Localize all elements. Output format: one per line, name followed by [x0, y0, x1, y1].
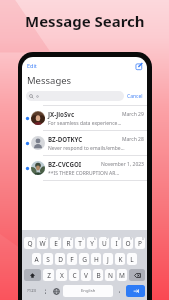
button[interactable]: Y [87, 237, 97, 249]
staticText: 2 [45, 237, 47, 241]
button[interactable]: Switch language [52, 285, 61, 297]
staticText: H [94, 255, 99, 264]
staticText: ?123 [27, 288, 37, 294]
staticText: M [119, 271, 125, 280]
staticText: English [81, 288, 96, 294]
staticText: W [39, 239, 46, 248]
button[interactable]: L [127, 253, 137, 265]
button[interactable]: Shift [24, 269, 41, 281]
staticText: Q [27, 239, 33, 248]
staticText: Y [90, 239, 94, 248]
button[interactable]: Search [126, 285, 145, 297]
staticText: JX-JioSvc [48, 110, 75, 118]
staticText: X [60, 271, 64, 280]
button[interactable]: X [56, 269, 67, 281]
button[interactable]: J [103, 253, 113, 265]
staticText: Message Search [25, 11, 145, 31]
button[interactable]: K [115, 253, 125, 265]
staticText: 0 [142, 237, 144, 241]
staticText: 6 [94, 237, 96, 241]
staticText: L [130, 255, 134, 264]
staticText: G [82, 255, 87, 264]
button[interactable]: W [37, 237, 48, 249]
staticText: C [72, 271, 77, 280]
button[interactable]: BZ-CVCGOI [22, 156, 147, 180]
staticText: J [107, 255, 109, 264]
button[interactable]: N [105, 269, 115, 281]
staticText: March 29 [122, 111, 144, 118]
staticText: 7 [106, 237, 108, 241]
button[interactable]: R [63, 237, 73, 249]
staticText: E [54, 239, 58, 248]
button[interactable]: I [111, 237, 121, 249]
staticText: For seamless data experience... [48, 120, 122, 127]
staticText: U [102, 239, 107, 248]
button[interactable]: Period [115, 285, 124, 297]
button[interactable]: A [32, 253, 41, 265]
button[interactable]: V [81, 269, 91, 281]
button[interactable]: F [67, 253, 77, 265]
button[interactable]: D [55, 253, 65, 265]
button[interactable]: B [93, 269, 103, 281]
staticText: March 28 [122, 136, 144, 143]
button[interactable]: Q [24, 237, 35, 249]
button[interactable]: BZ-DOTKYC [22, 131, 147, 155]
staticText: BZ-DOTKYC [48, 135, 83, 143]
button[interactable]: ?123 [24, 285, 39, 297]
button[interactable]: S [43, 253, 53, 265]
button[interactable]: M [117, 269, 127, 281]
staticText: **IS THERE CORRUPTION AR... [48, 170, 120, 177]
button[interactable]: E [50, 237, 61, 249]
button[interactable]: G [79, 253, 89, 265]
staticText: N [108, 271, 113, 280]
button[interactable]: H [91, 253, 101, 265]
button[interactable]: P [135, 237, 145, 249]
staticText: P [138, 239, 142, 248]
staticText: I [115, 239, 118, 248]
button[interactable]: C [69, 269, 79, 281]
staticText: O [125, 239, 131, 248]
button[interactable]: Z [43, 269, 54, 281]
button[interactable]: JX-JioSvc [22, 106, 147, 130]
staticText: B [96, 271, 101, 280]
staticText: 8 [118, 237, 120, 241]
staticText: D [58, 255, 63, 264]
staticText: S [46, 255, 50, 264]
staticText: V [84, 271, 88, 280]
button[interactable]: O [123, 237, 133, 249]
staticText: A [34, 255, 39, 264]
button[interactable]: Cancel [126, 93, 144, 100]
staticText: November 1, 2023 [101, 161, 144, 168]
staticText: Z [47, 271, 51, 280]
button[interactable]: Edit [26, 62, 38, 69]
staticText: T [78, 239, 82, 248]
staticText: BZ-CVCGOI [48, 160, 82, 168]
button[interactable]: U [99, 237, 109, 249]
staticText: K [118, 255, 123, 264]
button[interactable]: New message [134, 62, 143, 69]
staticText: R [66, 239, 71, 248]
staticText: Never respond to emails/embe... [48, 145, 125, 152]
button[interactable] [26, 91, 124, 101]
button[interactable]: Backspace [129, 269, 145, 281]
staticText: 5 [82, 237, 84, 241]
staticText: Edit [27, 62, 37, 69]
staticText: 4 [70, 237, 72, 241]
button[interactable]: English [63, 285, 113, 297]
staticText: 1 [32, 237, 34, 241]
staticText: Messages [27, 74, 72, 87]
button[interactable]: Comma [41, 285, 50, 297]
button[interactable]: T [75, 237, 85, 249]
staticText: 9 [130, 237, 132, 241]
staticText: Cancel [127, 93, 143, 100]
staticText: F [70, 255, 74, 264]
staticText: 3 [58, 237, 60, 241]
